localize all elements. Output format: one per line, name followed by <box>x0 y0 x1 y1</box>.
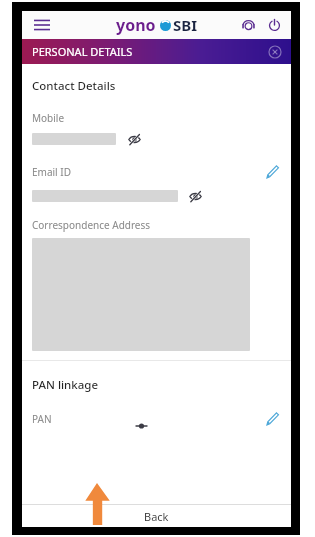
button[interactable]: Back <box>22 505 291 527</box>
button[interactable]: Support <box>237 14 259 36</box>
staticText: PERSONAL DETAILS <box>32 44 133 59</box>
staticText: PAN linkage <box>32 377 99 393</box>
staticText: Correspondence Address <box>32 218 151 232</box>
staticText: Mobile <box>32 111 65 125</box>
button[interactable]: Logout <box>263 14 285 36</box>
button[interactable]: Close <box>265 42 285 62</box>
staticText: Back <box>144 509 169 524</box>
button[interactable]: Show email <box>187 188 203 204</box>
button[interactable]: Edit email <box>263 163 281 181</box>
button[interactable]: Menu <box>30 13 54 37</box>
button[interactable]: Edit PAN <box>263 411 281 426</box>
button[interactable]: Show mobile number <box>126 131 142 147</box>
staticText: Email ID <box>32 165 71 179</box>
staticText: PAN <box>32 412 52 426</box>
staticText: Contact Details <box>32 78 116 94</box>
staticText: SBI <box>173 15 198 35</box>
staticText: yono <box>116 14 156 36</box>
